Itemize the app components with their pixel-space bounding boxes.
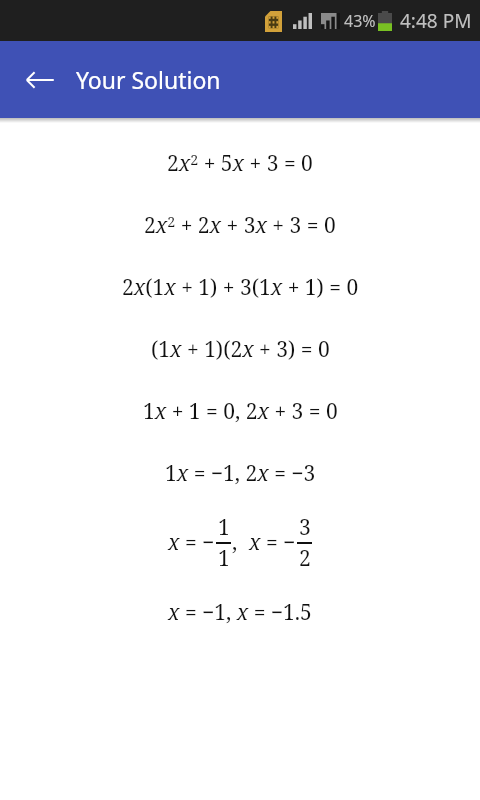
- staticText: 1: [218, 513, 230, 542]
- staticText: 2x2 + 5x + 3 = 0: [167, 149, 313, 178]
- staticText: 1x = −1, 2x = −3: [165, 459, 316, 488]
- staticText: 4:48 PM: [400, 8, 472, 34]
- staticText: 2x2 + 2x + 3x + 3 = 0: [144, 211, 336, 240]
- button[interactable]: Back: [14, 54, 66, 106]
- staticText: 2: [299, 544, 311, 573]
- staticText: 1: [218, 544, 230, 573]
- staticText: x = −: [249, 528, 296, 557]
- staticText: 43%: [344, 10, 376, 32]
- staticText: x = −1, x = −1.5: [168, 598, 312, 627]
- staticText: 2x(1x + 1) + 3(1x + 1) = 0: [122, 273, 359, 302]
- staticText: Your Solution: [76, 64, 221, 95]
- staticText: x = −: [168, 528, 215, 557]
- staticText: 1x + 1 = 0, 2x + 3 = 0: [143, 397, 338, 426]
- staticText: ,: [232, 528, 249, 557]
- staticText: 3: [299, 513, 311, 542]
- staticText: (1x + 1)(2x + 3) = 0: [151, 335, 330, 364]
